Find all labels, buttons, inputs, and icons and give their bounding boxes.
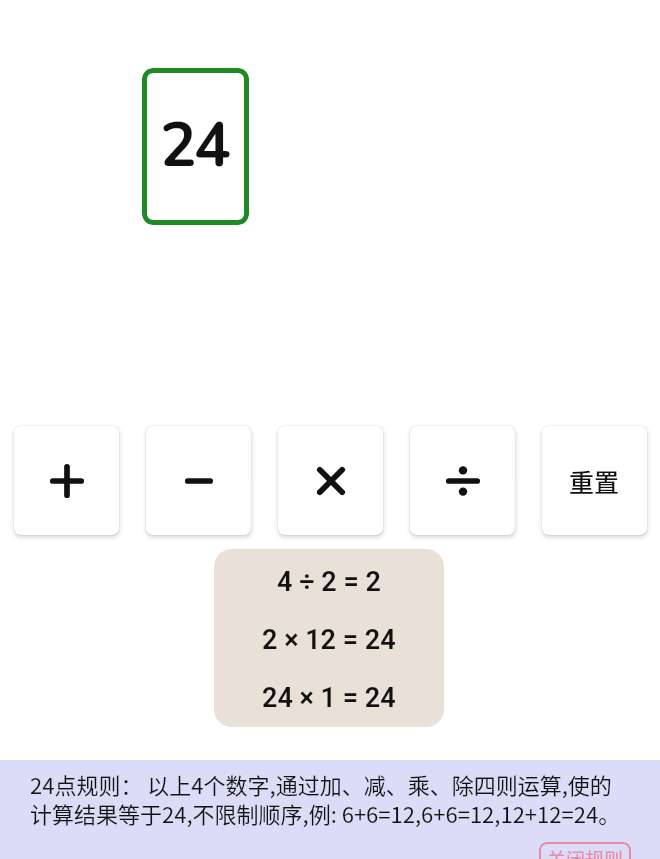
button[interactable]: Divide xyxy=(410,426,515,535)
staticText: 4 ÷ 2 = 2 xyxy=(277,566,381,598)
button[interactable]: 关闭规则 xyxy=(539,842,631,859)
staticText: 24点规则： 以上4个数字,通过加、减、乘、除四则运算,使的 计算结果等于24,… xyxy=(30,768,621,829)
staticText: 关闭规则 xyxy=(547,845,624,859)
staticText: 2 × 12 = 24 xyxy=(262,624,396,656)
staticText: 24 × 1 = 24 xyxy=(262,682,396,714)
button[interactable]: Reset xyxy=(542,426,647,535)
button[interactable]: 24 xyxy=(142,68,249,225)
button[interactable]: Multiply xyxy=(278,426,383,535)
button[interactable]: Minus xyxy=(146,426,251,535)
button[interactable]: Plus xyxy=(14,426,119,535)
staticText: 24 xyxy=(160,104,229,187)
staticText: 重置 xyxy=(569,463,620,499)
